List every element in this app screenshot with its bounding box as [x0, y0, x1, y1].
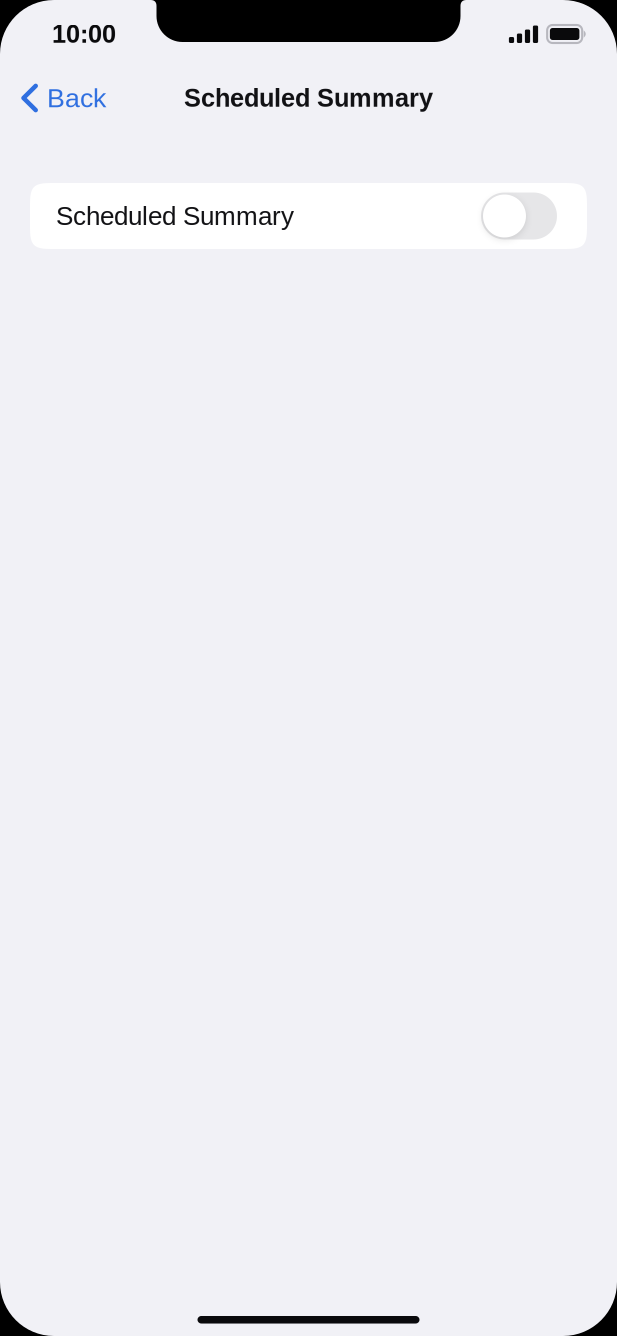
button[interactable]: Back	[0, 75, 118, 121]
button[interactable]: Scheduled Summary	[30, 183, 587, 249]
staticText: Scheduled Summary	[56, 201, 294, 230]
staticText: Scheduled Summary	[184, 84, 433, 112]
staticText: Back	[47, 83, 106, 113]
staticText: 10:00	[52, 20, 116, 48]
